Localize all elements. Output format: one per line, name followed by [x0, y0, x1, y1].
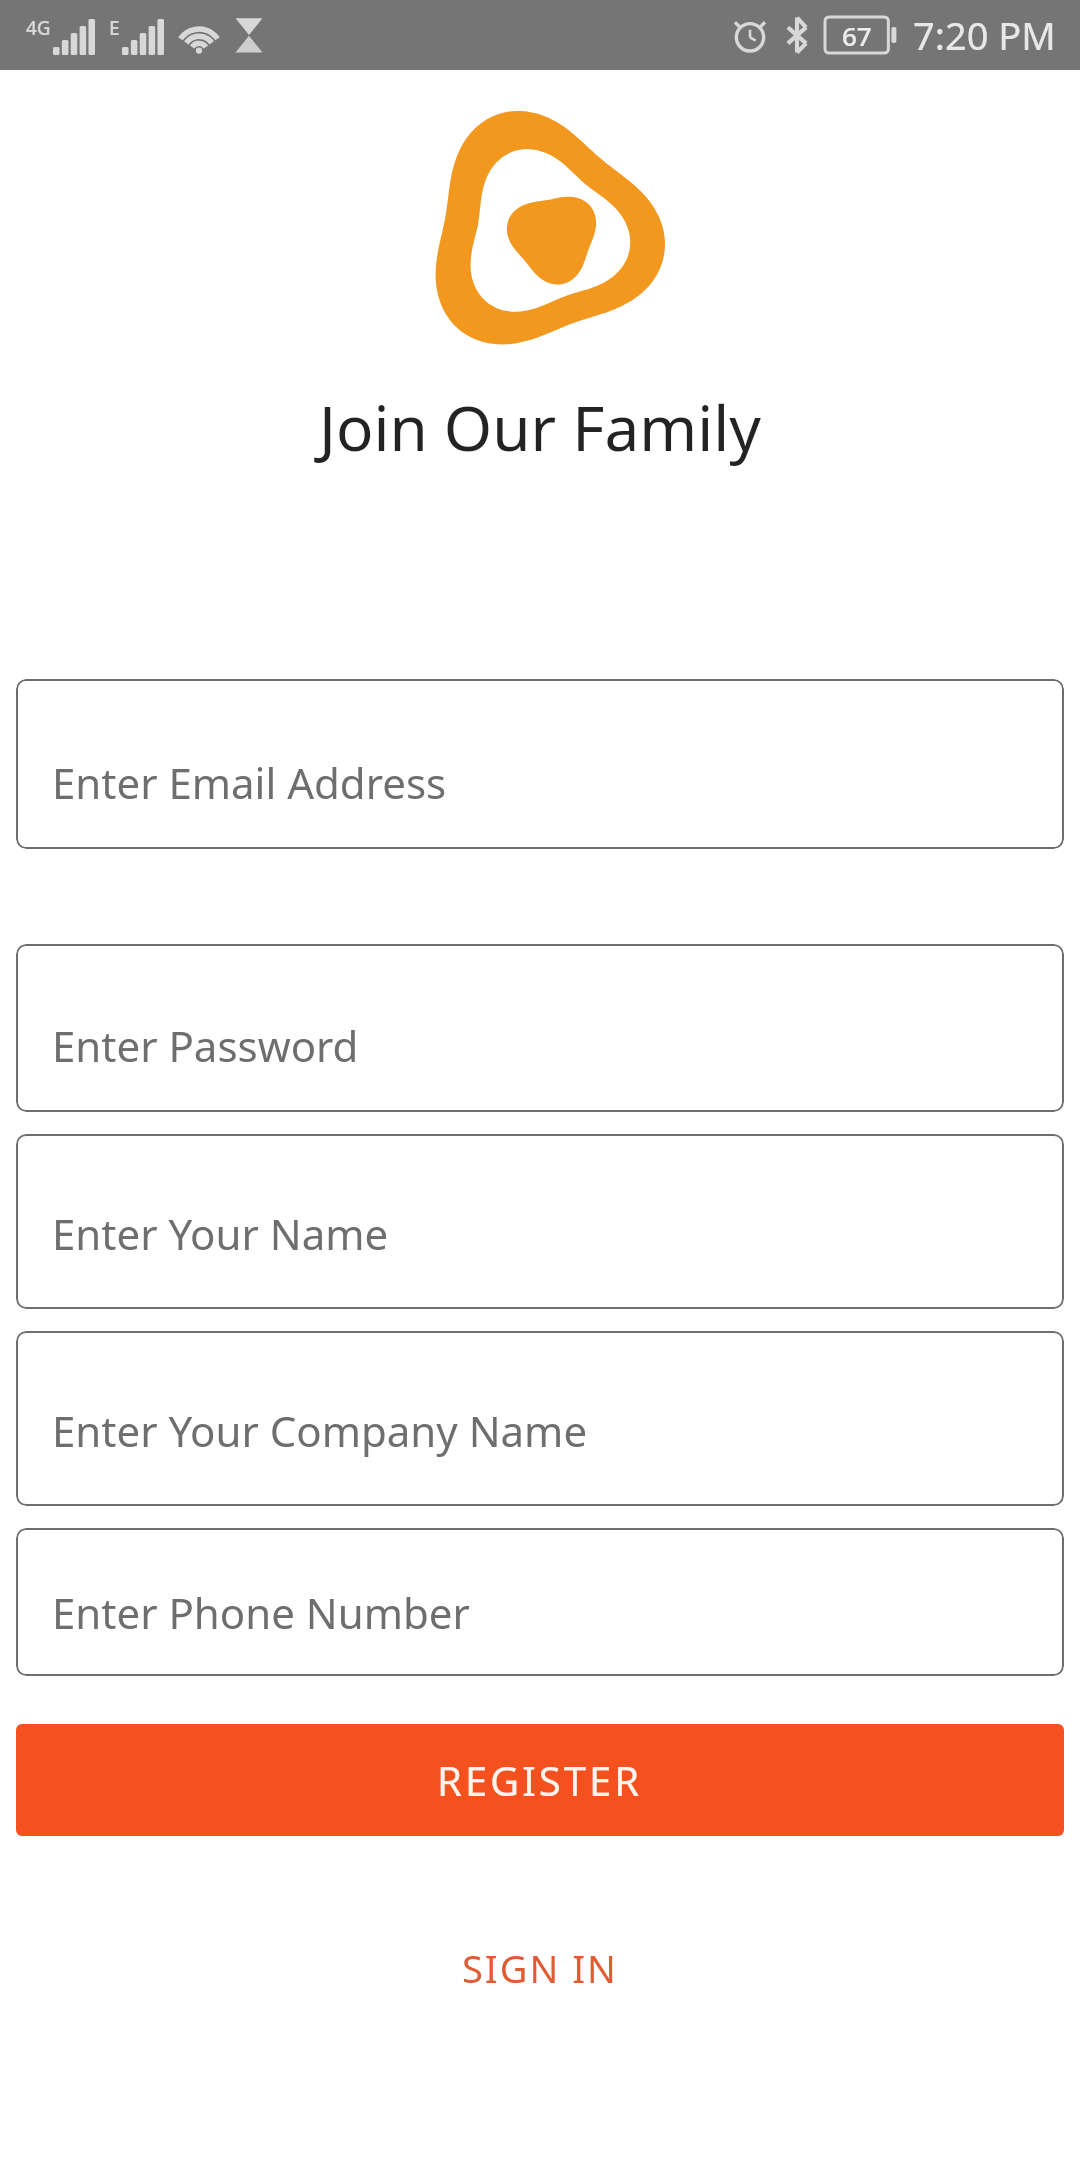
staticText: Enter Phone Number [52, 1584, 470, 1641]
button[interactable]: REGISTER [16, 1724, 1064, 1836]
button[interactable]: Enter Phone Number [16, 1528, 1064, 1676]
staticText: 67 [842, 18, 872, 53]
staticText: E [109, 15, 120, 41]
button[interactable]: Enter Password [16, 944, 1064, 1112]
staticText: SIGN IN [462, 1942, 618, 1994]
staticText: 4G [26, 15, 51, 41]
staticText: Enter Password [52, 1017, 359, 1074]
button[interactable]: Enter Email Address [16, 679, 1064, 849]
button[interactable]: SIGN IN [422, 1928, 658, 2008]
staticText: Join Our Family [319, 385, 761, 469]
staticText: Enter Email Address [52, 754, 447, 811]
staticText: Enter Your Company Name [52, 1402, 588, 1459]
staticText: Enter Your Name [52, 1205, 389, 1262]
button[interactable]: Enter Your Company Name [16, 1331, 1064, 1506]
staticText: REGISTER [437, 1753, 643, 1807]
button[interactable]: Enter Your Name [16, 1134, 1064, 1309]
staticText: 7:20 PM [913, 9, 1056, 61]
